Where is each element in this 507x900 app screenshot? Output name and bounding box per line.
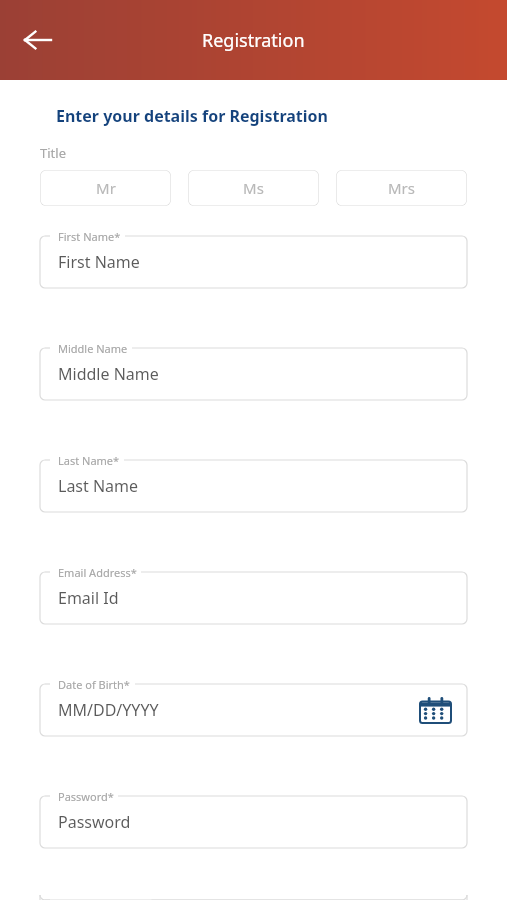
staticText: First Name* [58,229,121,244]
staticText: Enter your details for Registration [56,105,328,127]
staticText: Email Id [58,587,119,609]
staticText: Registration [202,28,305,53]
staticText: Email Address* [58,565,137,580]
button[interactable]: Mr [40,170,171,206]
button[interactable]: Password* [40,796,467,848]
button[interactable]: Pick date [420,697,451,723]
button[interactable]: Email Address* [40,572,467,624]
staticText: Mr [96,178,116,198]
staticText: Password* [58,789,114,804]
button[interactable]: Date of Birth* [40,684,467,736]
staticText: MM/DD/YYYY [58,699,159,721]
staticText: Title [40,144,66,162]
staticText: Mrs [388,178,415,198]
staticText: Middle Name [58,341,128,356]
staticText: Password [58,811,131,833]
button[interactable]: Last Name* [40,460,467,512]
staticText: Middle Name [58,363,159,385]
staticText: Date of Birth* [58,677,130,692]
staticText: Last Name* [58,453,120,468]
staticText: Ms [243,178,264,198]
button[interactable]: Back [14,16,62,64]
staticText: First Name [58,251,140,273]
button[interactable]: Middle Name [40,348,467,400]
staticText: Last Name [58,475,139,497]
button[interactable]: First Name* [40,236,467,288]
button[interactable]: Ms [188,170,319,206]
button[interactable]: Mrs [336,170,467,206]
